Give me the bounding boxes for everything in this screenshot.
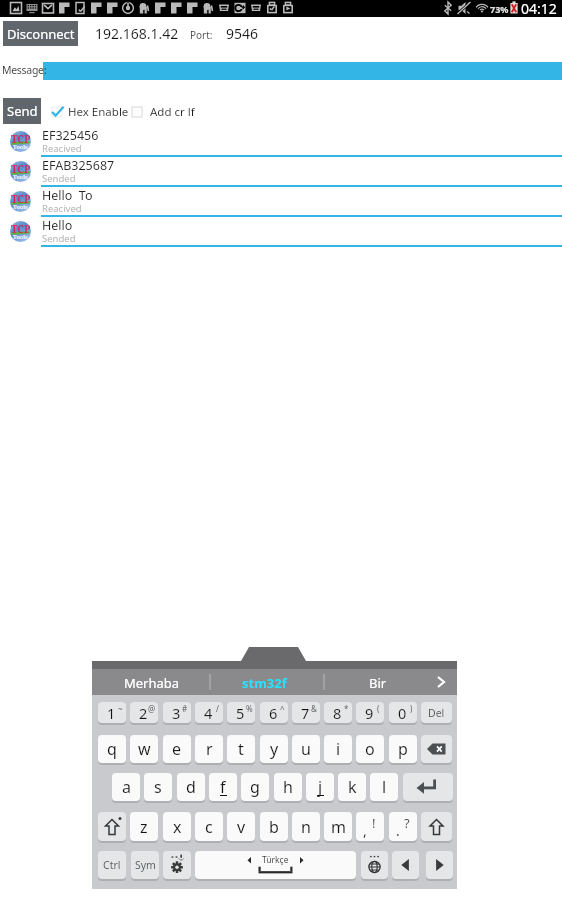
staticText: stm32f <box>242 674 287 692</box>
button[interactable]: j <box>306 773 334 801</box>
staticText: ( <box>377 703 380 714</box>
staticText: Reacived <box>42 202 82 215</box>
button[interactable]: 8 <box>324 702 352 723</box>
staticText: 9546 <box>226 24 259 43</box>
button[interactable]: TCP <box>0 187 562 217</box>
staticText: Ctrl <box>103 858 121 872</box>
button[interactable]: h <box>274 773 302 801</box>
button[interactable]: 0 <box>389 702 417 723</box>
button[interactable]: x <box>163 812 191 841</box>
button[interactable]: TCP <box>0 127 562 157</box>
button[interactable]: TCP <box>0 217 562 247</box>
button[interactable]: Add cr lf <box>130 102 195 122</box>
button[interactable]: n <box>292 812 320 841</box>
staticText: ? <box>404 814 410 832</box>
button[interactable]: . <box>389 812 417 841</box>
staticText: . <box>396 821 400 840</box>
staticText: h <box>283 776 293 798</box>
button[interactable]: Language <box>361 851 388 879</box>
button[interactable]: m <box>324 812 352 841</box>
staticText: Tools <box>13 203 28 210</box>
button[interactable]: b <box>260 812 288 841</box>
staticText: Sended <box>42 232 76 245</box>
staticText: q <box>107 738 117 760</box>
button[interactable]: Backspace <box>421 735 452 763</box>
staticText: t <box>238 738 244 760</box>
staticText: TCP <box>11 132 31 146</box>
button[interactable]: 1 <box>98 702 126 723</box>
button[interactable]: q <box>98 735 126 763</box>
staticText: s <box>154 776 162 798</box>
button[interactable]: r <box>195 735 223 763</box>
button[interactable]: Settings <box>163 851 191 879</box>
button[interactable]: , <box>356 812 384 841</box>
staticText: TCP <box>11 222 31 236</box>
button[interactable]: f <box>209 773 237 801</box>
staticText: Tools <box>13 173 28 180</box>
staticText: % <box>246 703 253 714</box>
button[interactable]: 6 <box>260 702 288 723</box>
button[interactable]: Space <box>195 851 356 879</box>
button[interactable]: Shift <box>421 812 452 841</box>
button[interactable]: e <box>163 735 191 763</box>
staticText: 8 <box>333 703 342 723</box>
button[interactable]: d <box>177 773 205 801</box>
button[interactable]: 7 <box>292 702 320 723</box>
staticText: r <box>206 738 213 760</box>
staticText: 7 <box>301 703 310 723</box>
button[interactable]: z <box>130 812 158 841</box>
button[interactable]: 4 <box>195 702 223 723</box>
button[interactable]: Del <box>421 702 452 723</box>
button[interactable]: Ctrl <box>98 851 126 879</box>
button[interactable]: y <box>260 735 288 763</box>
button[interactable]: k <box>338 773 366 801</box>
button[interactable]: i <box>324 735 352 763</box>
staticText: a <box>122 776 131 798</box>
button[interactable]: p <box>389 735 417 763</box>
staticText: Hello <box>42 217 73 234</box>
staticText: y <box>270 738 279 760</box>
button[interactable]: 3 <box>163 702 191 723</box>
staticText: p <box>398 738 408 760</box>
staticText: Sended <box>42 172 76 185</box>
button[interactable]: Move right <box>426 851 453 879</box>
staticText: u <box>301 738 311 760</box>
staticText: ~ <box>118 703 123 714</box>
staticText: Hello To <box>42 187 93 204</box>
staticText: Sym <box>135 858 156 872</box>
button[interactable]: a <box>112 773 140 801</box>
button[interactable]: g <box>241 773 269 801</box>
button[interactable]: Shift <box>98 812 126 841</box>
button[interactable]: 2 <box>130 702 158 723</box>
button[interactable]: 5 <box>227 702 255 723</box>
staticText: # <box>182 703 188 714</box>
button[interactable]: 9 <box>356 702 384 723</box>
button[interactable]: u <box>292 735 320 763</box>
staticText: 2 <box>139 703 148 723</box>
button[interactable]: Sym <box>131 851 159 879</box>
button[interactable]: Send <box>3 98 41 124</box>
button[interactable]: Move left <box>392 851 419 879</box>
button[interactable]: More suggestions <box>425 669 457 695</box>
staticText: i <box>336 738 341 760</box>
button[interactable]: l <box>370 773 398 801</box>
staticText: Add cr lf <box>150 104 195 120</box>
staticText: d <box>186 776 196 798</box>
button[interactable]: t <box>227 735 255 763</box>
button[interactable]: w <box>130 735 158 763</box>
button[interactable]: Enter <box>403 773 453 801</box>
staticText: Del <box>428 706 445 720</box>
staticText: @ <box>148 703 156 714</box>
button[interactable]: s <box>144 773 172 801</box>
button[interactable]: Hex Enable <box>50 102 129 122</box>
button[interactable]: v <box>227 812 255 841</box>
staticText: EF325456 <box>42 127 99 144</box>
staticText: ^ <box>280 703 285 714</box>
staticText: 6 <box>269 703 278 723</box>
button[interactable]: o <box>356 735 384 763</box>
button[interactable]: c <box>195 812 223 841</box>
staticText: o <box>365 738 375 760</box>
button[interactable]: Disconnect <box>3 21 78 46</box>
button[interactable]: TCP <box>0 157 562 187</box>
